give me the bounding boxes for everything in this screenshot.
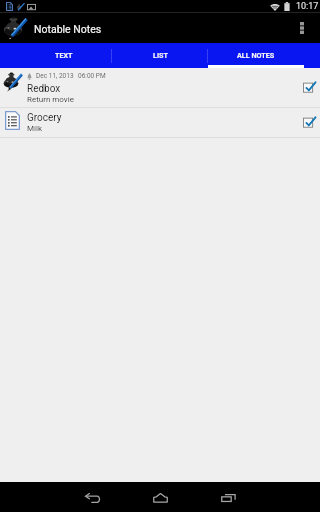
button[interactable]: Grocery [0, 108, 320, 137]
button[interactable]: More options [292, 13, 320, 43]
staticText: LIST [153, 51, 168, 59]
staticText: ALL NOTES [237, 51, 275, 59]
staticText: 06:00 PM [78, 72, 106, 80]
button[interactable]: TEXT [16, 43, 112, 68]
staticText: TEXT [55, 51, 73, 59]
button[interactable]: Dec 11, 2013 [0, 68, 320, 107]
staticText: Return movie [27, 95, 74, 104]
staticText: Redbox [27, 83, 61, 95]
button[interactable]: Select note [297, 112, 320, 130]
button[interactable]: Back [66, 482, 118, 512]
button[interactable]: Recent apps [202, 482, 254, 512]
button[interactable]: ALL NOTES [208, 43, 304, 68]
staticText: Dec 11, 2013 [36, 72, 74, 80]
button[interactable]: Select note [297, 77, 320, 95]
staticText: Grocery [27, 112, 62, 124]
button[interactable]: LIST [112, 43, 208, 68]
button[interactable]: Home [134, 482, 186, 512]
staticText: Milk [27, 124, 42, 133]
staticText: 10:17 [296, 1, 319, 12]
staticText: Notable Notes [34, 23, 102, 35]
